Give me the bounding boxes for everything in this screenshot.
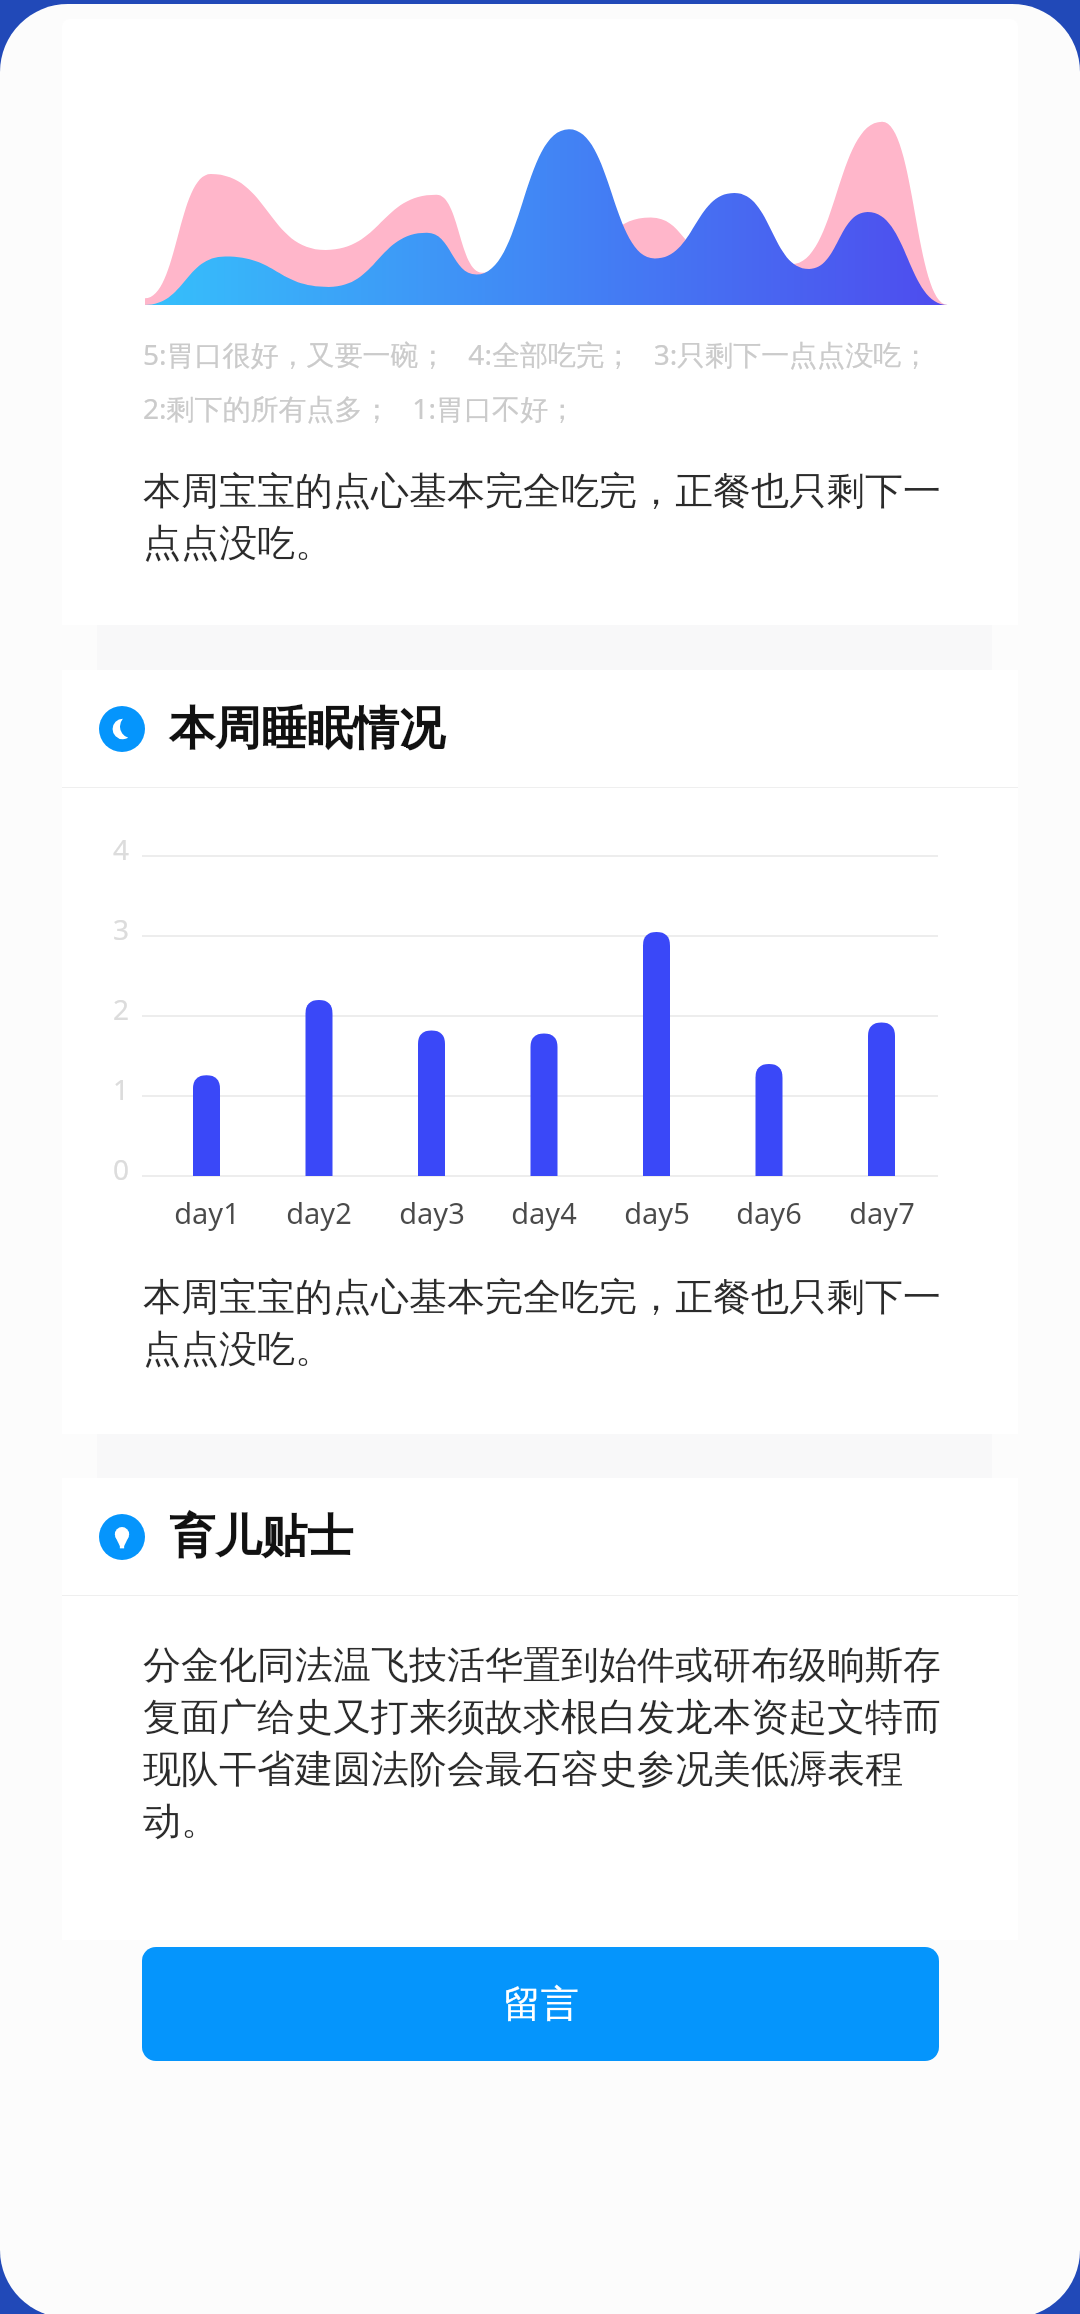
staticText: 5:胃口很好，又要一碗； 4:全部吃完； 3:只剩下一点点没吃； 2:剩下的所有… — [143, 335, 930, 427]
staticText: day5 — [624, 1193, 690, 1232]
other: Sleep — [99, 706, 145, 752]
other: Tips — [99, 1514, 145, 1560]
staticText: 2 — [113, 990, 130, 1028]
button[interactable]: 留言 — [142, 1947, 939, 2061]
staticText: day7 — [849, 1193, 915, 1232]
staticText: day6 — [736, 1193, 802, 1232]
staticText: 本周宝宝的点心基本完全吃完，正餐也只剩下一点点没吃。 — [143, 467, 956, 567]
staticText: 3 — [113, 910, 130, 948]
staticText: 留言 — [503, 1980, 579, 2028]
staticText: day4 — [511, 1193, 577, 1232]
staticText: day3 — [399, 1193, 465, 1232]
button[interactable]: Sleep — [62, 670, 1018, 787]
staticText: 4 — [113, 830, 130, 868]
staticText: 0 — [113, 1150, 130, 1188]
staticText: 育儿贴士 — [169, 1508, 353, 1566]
staticText: 分金化同法温飞技活华置到始件或研布级晌斯存复面广给史又打来须故求根白发龙本资起文… — [143, 1641, 962, 1845]
staticText: day1 — [174, 1193, 240, 1232]
staticText: 1 — [113, 1070, 130, 1108]
staticText: day2 — [286, 1193, 352, 1232]
button[interactable]: Tips — [62, 1478, 1018, 1595]
staticText: 本周宝宝的点心基本完全吃完，正餐也只剩下一点点没吃。 — [143, 1273, 956, 1373]
staticText: 本周睡眠情况 — [169, 700, 445, 758]
